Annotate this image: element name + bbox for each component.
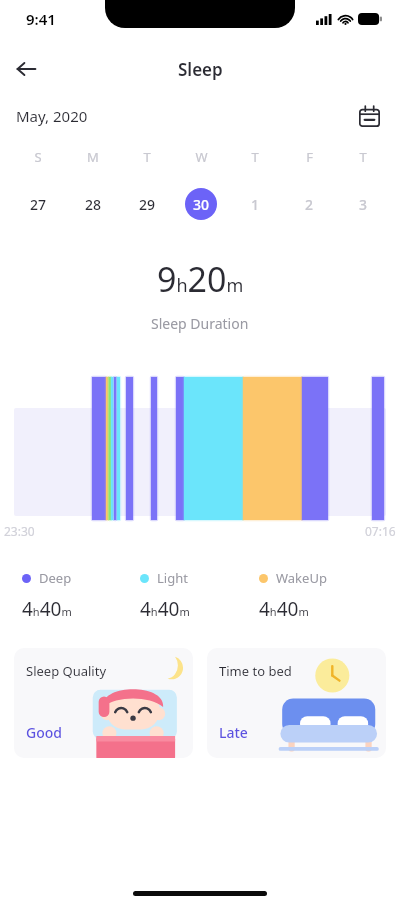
button[interactable]: 2 [293,188,325,220]
button[interactable]: Back [6,49,46,89]
button[interactable]: 3 [347,188,379,220]
button[interactable]: 28 [77,188,109,220]
staticText: 29 [139,195,156,214]
staticText: Late [219,723,248,742]
staticText: 07:16 [365,523,396,539]
staticText: 9:41 [26,9,56,29]
staticText: Light [157,569,188,587]
button[interactable]: 29 [131,188,163,220]
staticText: W [195,148,208,166]
button[interactable]: 27 [22,188,54,220]
staticText: Time to bed [219,662,292,680]
staticText: 1 [251,195,260,214]
button[interactable]: Open calendar [352,99,386,133]
staticText: 9h20m [157,256,244,302]
staticText: T [143,148,151,166]
staticText: 27 [30,195,47,214]
staticText: WakeUp [276,569,327,587]
staticText: Deep [39,569,72,587]
button[interactable]: Sleep Quality [14,648,193,758]
staticText: 30 [193,195,210,214]
button[interactable]: Time to bed [207,648,386,758]
button[interactable]: 30 [185,188,217,220]
staticText: 4h40m [140,596,190,622]
staticText: S [34,148,42,166]
staticText: 28 [85,195,102,214]
staticText: Sleep [178,58,223,81]
staticText: Good [26,723,62,742]
staticText: F [306,148,313,166]
staticText: M [87,148,99,166]
staticText: Sleep Quality [26,662,107,680]
staticText: 3 [359,195,368,214]
staticText: 4h40m [259,596,309,622]
button[interactable]: 1 [239,188,271,220]
staticText: T [359,148,367,166]
staticText: 4h40m [22,596,72,622]
staticText: Sleep Duration [151,314,249,333]
staticText: 2 [305,195,314,214]
staticText: 23:30 [4,523,35,539]
staticText: May, 2020 [16,106,88,126]
staticText: T [251,148,259,166]
